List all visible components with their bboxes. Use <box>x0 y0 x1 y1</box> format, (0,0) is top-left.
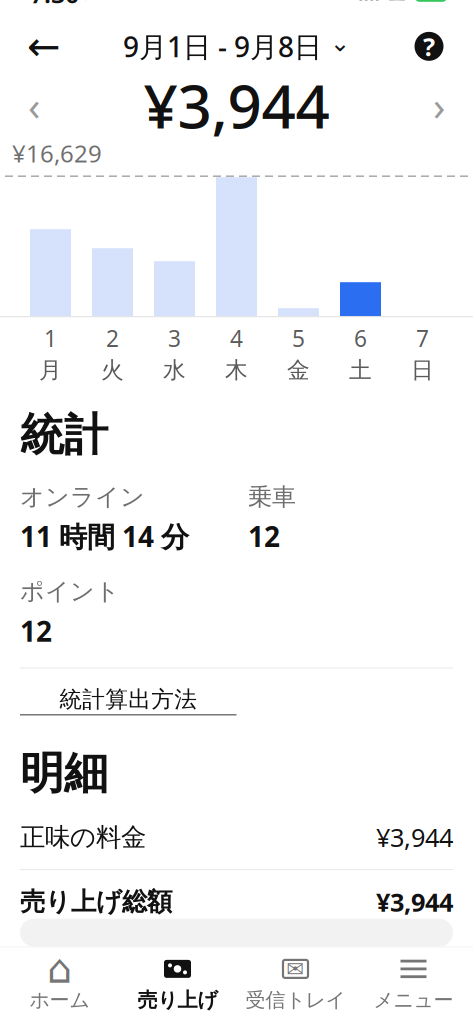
staticText: 7:30 <box>30 0 79 10</box>
button[interactable]: ✉ <box>236 954 354 1014</box>
staticText: 2 <box>106 323 119 353</box>
button[interactable]: 9月1日 - 9月8日 <box>113 20 360 73</box>
staticText: 火 <box>101 356 124 384</box>
staticText: 水 <box>163 356 186 384</box>
staticText: 11 時間 14 分 <box>20 518 189 555</box>
staticText: オンライン <box>20 482 145 512</box>
staticText: 正味の料金 <box>20 822 146 853</box>
staticText: ← <box>27 24 61 69</box>
staticText: ⌂ <box>47 946 72 992</box>
staticText: ⌄ <box>330 29 350 56</box>
staticText: 1 <box>44 323 57 353</box>
staticText: 日 <box>411 356 434 384</box>
staticText: 3 <box>168 323 181 353</box>
button[interactable]: 売り上げ <box>118 954 236 1014</box>
staticText: 売り上げ総額 <box>20 886 172 917</box>
staticText: 統計算出方法 <box>59 685 197 713</box>
staticText: ホーム <box>29 988 89 1012</box>
staticText: 金 <box>287 356 310 384</box>
staticText: 統計 <box>20 408 108 462</box>
staticText: 9月1日 - 9月8日 <box>123 28 322 65</box>
staticText: ポイント <box>20 577 120 606</box>
staticText: › <box>433 79 445 132</box>
staticText: 12 <box>20 612 52 649</box>
staticText: 土 <box>349 356 372 384</box>
staticText: ¥3,944 <box>376 820 453 854</box>
staticText: 明細 <box>20 746 108 800</box>
staticText: 6 <box>354 323 367 353</box>
button[interactable]: ヘルプ <box>407 24 451 68</box>
staticText: 5 <box>292 323 305 353</box>
staticText: メニュー <box>373 988 453 1012</box>
button[interactable]: メニュー <box>354 954 472 1014</box>
button[interactable]: 統計算出方法 <box>20 680 236 720</box>
staticText: 4 <box>230 323 243 353</box>
staticText: 乗車 <box>248 482 296 512</box>
button[interactable]: 前の期間 <box>12 83 56 127</box>
staticText: ¥3,944 <box>143 65 329 145</box>
staticText: 売り上げ <box>137 988 217 1012</box>
staticText: 受信トレイ <box>245 988 345 1012</box>
staticText: 7 <box>416 323 429 353</box>
staticText: 12 <box>248 518 280 555</box>
staticText: ¥16,629 <box>12 137 102 169</box>
staticText: ¥3,944 <box>376 885 453 919</box>
staticText: 100 <box>419 0 443 3</box>
staticText: ✉ <box>286 957 304 981</box>
button[interactable]: 戻る <box>22 24 66 68</box>
button[interactable]: ⌂ <box>0 954 118 1014</box>
staticText: ? <box>423 29 435 63</box>
staticText: 木 <box>225 356 248 384</box>
staticText: ‹ <box>28 79 40 132</box>
staticText: 月 <box>39 356 62 384</box>
button[interactable]: 次の期間 <box>417 83 461 127</box>
